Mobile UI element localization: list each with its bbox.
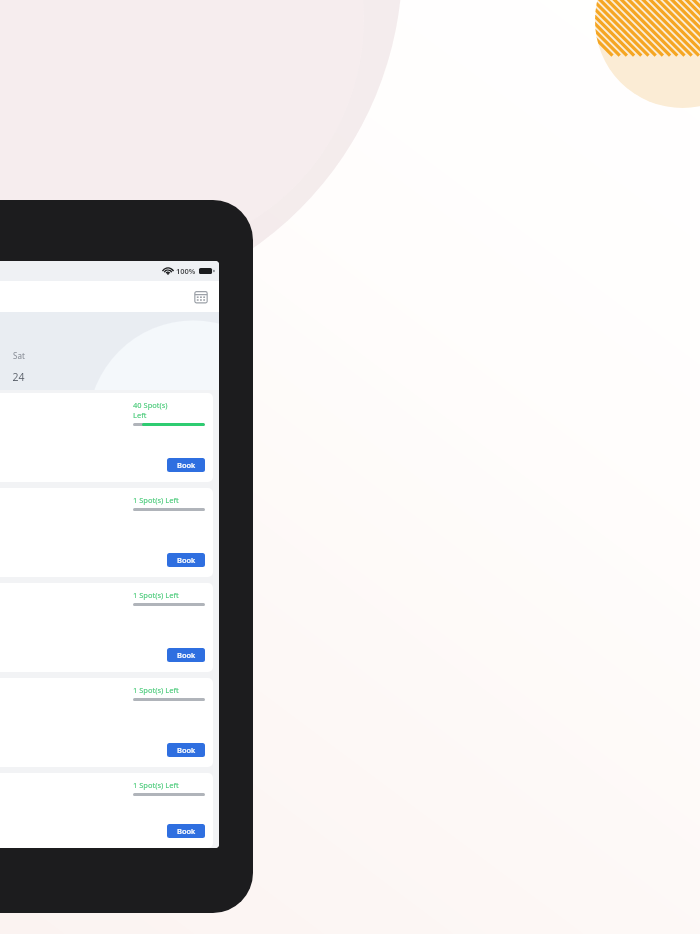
staticText: Sat: [13, 350, 25, 361]
staticText: 1 Spot(s) Left: [133, 495, 179, 505]
staticText: Book: [177, 826, 196, 836]
button[interactable]: Sat: [1, 350, 36, 384]
button[interactable]: Book: [167, 458, 205, 472]
staticText: Book: [177, 555, 196, 565]
staticText: Book: [177, 650, 196, 660]
button[interactable]: 1 Spot(s) Left: [0, 488, 213, 577]
staticText: Book: [177, 460, 196, 470]
staticText: 1 Spot(s) Left: [133, 780, 179, 790]
staticText: 40 Spot(s) Left: [133, 400, 168, 420]
button[interactable]: Calendar: [191, 287, 211, 307]
button[interactable]: 1 Spot(s) Left: [0, 583, 213, 672]
staticText: Book: [177, 745, 196, 755]
staticText: 24: [12, 370, 25, 384]
staticText: 100%: [176, 266, 196, 276]
button[interactable]: Book: [167, 553, 205, 567]
staticText: 1 Spot(s) Left: [133, 590, 179, 600]
button[interactable]: Book: [167, 648, 205, 662]
button[interactable]: 40 Spot(s) Left: [0, 393, 213, 482]
button[interactable]: 1 Spot(s) Left: [0, 773, 213, 848]
staticText: 1 Spot(s) Left: [133, 685, 179, 695]
button[interactable]: Book: [167, 824, 205, 838]
button[interactable]: Book: [167, 743, 205, 757]
button[interactable]: 1 Spot(s) Left: [0, 678, 213, 767]
